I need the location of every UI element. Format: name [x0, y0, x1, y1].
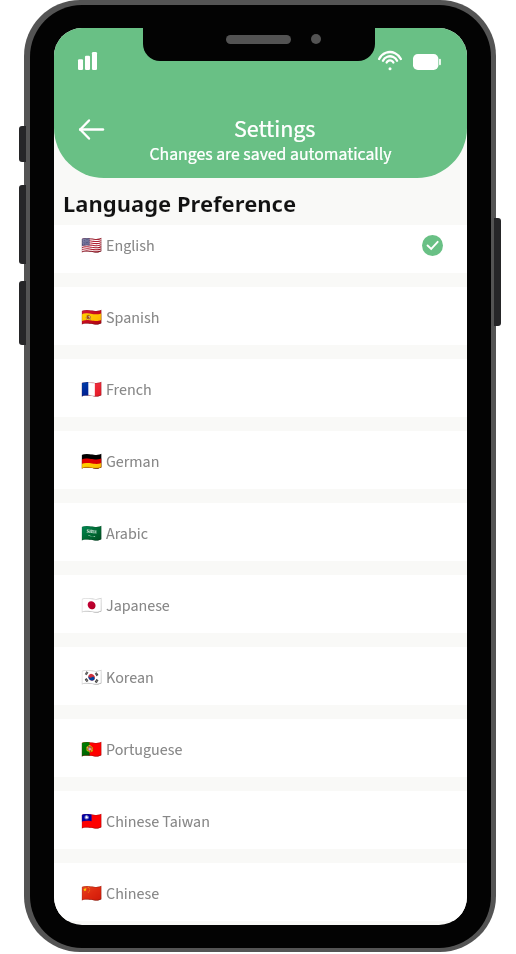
button[interactable]: Back — [69, 107, 113, 151]
staticText: Changes are saved automatically — [149, 142, 392, 167]
staticText: 🇺🇸 — [81, 235, 103, 255]
staticText: French — [106, 379, 152, 402]
staticText: Language Preference — [63, 188, 297, 218]
staticText: 🇰🇷 — [81, 667, 103, 687]
staticText: 🇪🇸 — [81, 307, 103, 327]
button[interactable]: 🇺🇸 — [54, 225, 467, 273]
staticText: English — [106, 235, 155, 258]
staticText: Settings — [234, 112, 316, 146]
staticText: 🇫🇷 — [81, 379, 103, 399]
staticText: Arabic — [106, 523, 149, 546]
button[interactable]: 🇹🇼 — [54, 791, 467, 849]
staticText: 🇯🇵 — [81, 595, 103, 615]
staticText: German — [106, 451, 160, 474]
staticText: Chinese Taiwan — [106, 811, 210, 834]
staticText: 🇵🇹 — [81, 739, 103, 759]
staticText: Korean — [106, 667, 154, 690]
button[interactable]: 🇨🇳 — [54, 863, 467, 921]
staticText: Chinese — [106, 883, 160, 906]
button[interactable]: 🇸🇦 — [54, 503, 467, 561]
staticText: Spanish — [106, 307, 160, 330]
button[interactable]: 🇰🇷 — [54, 647, 467, 705]
button[interactable]: 🇩🇪 — [54, 431, 467, 489]
button[interactable]: 🇪🇸 — [54, 287, 467, 345]
staticText: 🇸🇦 — [81, 523, 103, 543]
staticText: 🇨🇳 — [81, 883, 103, 903]
staticText: 🇹🇼 — [81, 811, 103, 831]
staticText: 🇩🇪 — [81, 451, 103, 471]
staticText: Japanese — [106, 595, 170, 618]
staticText: Portuguese — [106, 739, 183, 762]
button[interactable]: 🇫🇷 — [54, 359, 467, 417]
button[interactable]: 🇵🇹 — [54, 719, 467, 777]
button[interactable]: 🇯🇵 — [54, 575, 467, 633]
